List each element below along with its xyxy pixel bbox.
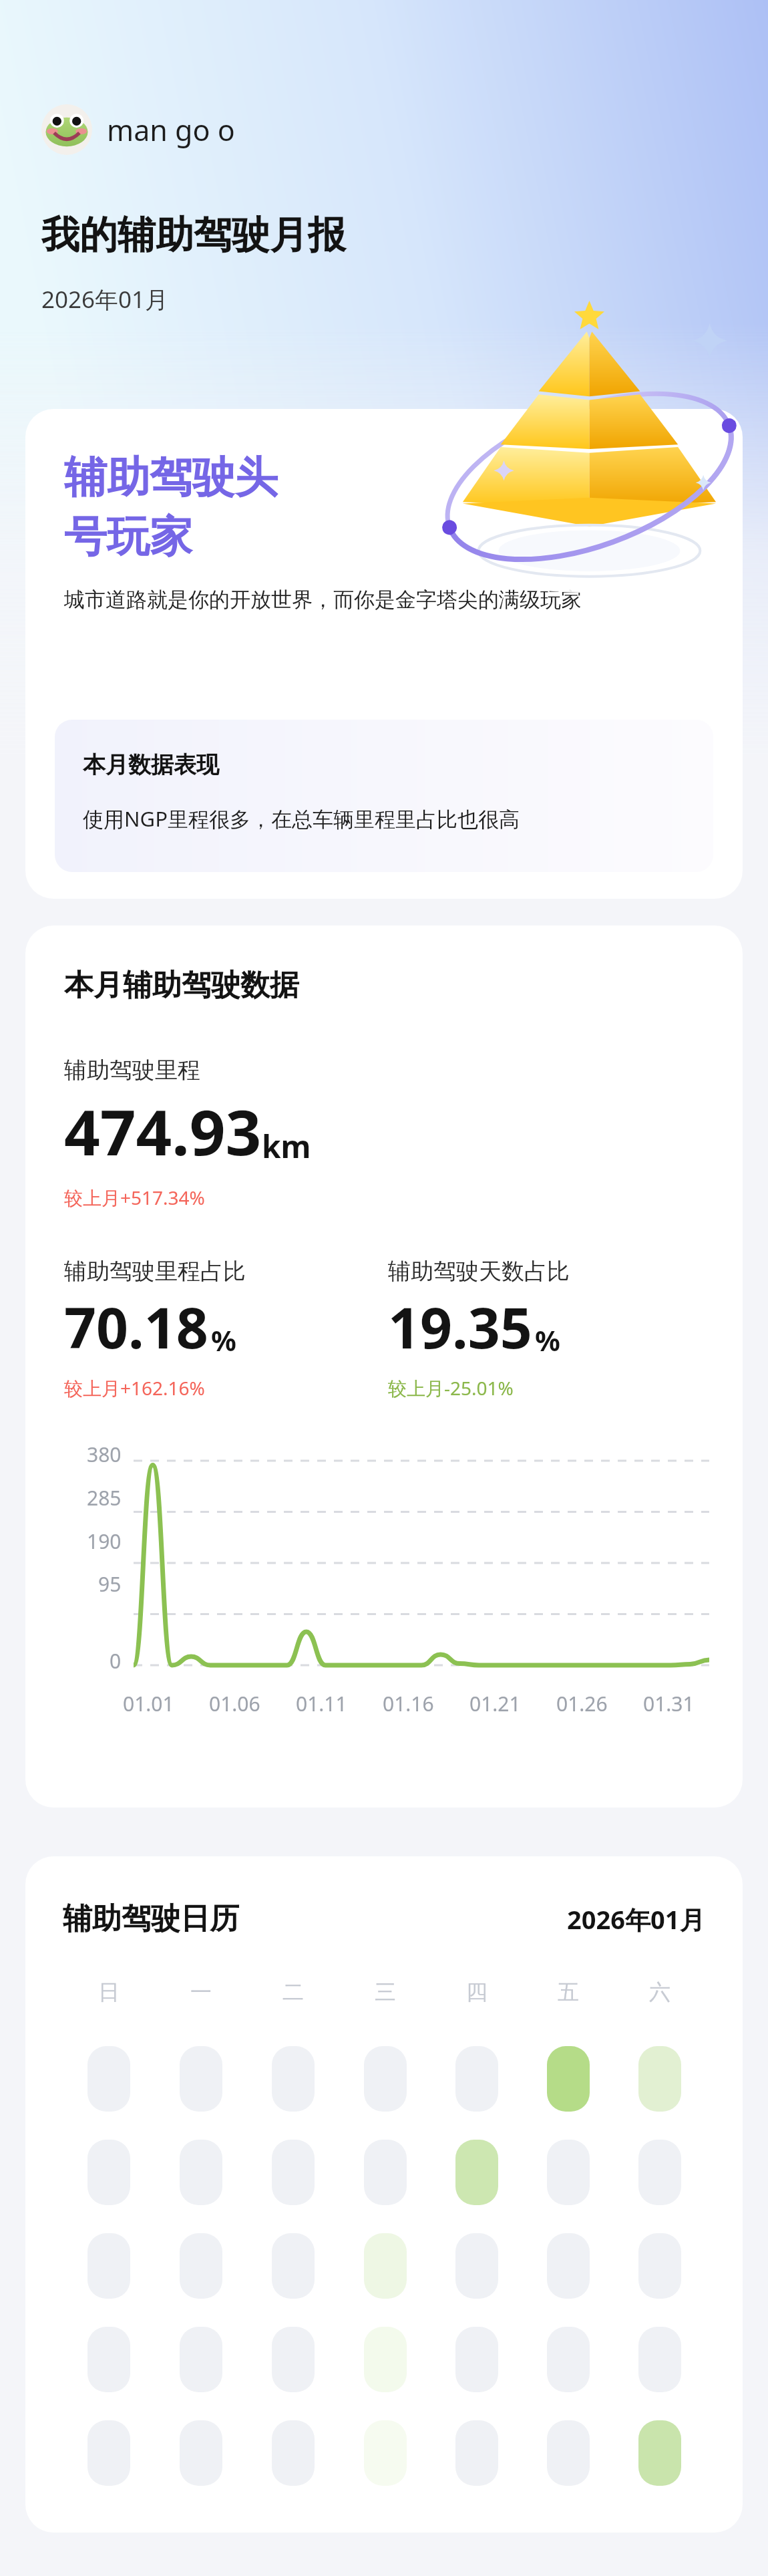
staticText: 使用NGP里程很多，在总车辆里程里占比也很高 [83,805,520,833]
button[interactable] [547,2140,590,2205]
button[interactable] [180,2046,222,2112]
staticText: 三 [375,1979,396,2005]
staticText: km [262,1125,311,1167]
other: Profile avatar [43,106,90,153]
staticText: 辅助驾驶里程占比 [64,1257,246,1286]
button[interactable] [180,2233,222,2299]
staticText: % [535,1321,560,1359]
button[interactable] [87,2327,130,2392]
button[interactable] [272,2420,315,2486]
staticText: 二 [282,1979,304,2005]
staticText: 本月辅助驾驶数据 [64,967,299,1004]
button[interactable] [87,2140,130,2205]
button[interactable] [547,2046,590,2112]
staticText: 285 [87,1484,122,1512]
staticText: 日 [98,1979,120,2005]
staticText: 辅助驾驶头 号玩家 [64,450,278,564]
button[interactable] [455,2233,498,2299]
button[interactable] [364,2140,407,2205]
button[interactable] [272,2233,315,2299]
staticText: 辅助驾驶天数占比 [388,1257,570,1286]
staticText: % [211,1321,236,1359]
staticText: 四 [466,1979,488,2005]
button[interactable] [638,2420,681,2486]
staticText: 2026年01月 [41,283,169,315]
button[interactable] [272,2140,315,2205]
button[interactable] [87,2046,130,2112]
button[interactable]: 辅助驾驶日历 [25,1856,743,2533]
staticText: 01.11 [296,1690,347,1717]
button[interactable] [87,2420,130,2486]
button[interactable]: 本月数据表现 [55,720,713,872]
staticText: 一 [190,1979,212,2005]
button[interactable] [364,2233,407,2299]
button[interactable] [638,2327,681,2392]
button[interactable]: 本月辅助驾驶数据 [25,925,743,1808]
button[interactable] [638,2140,681,2205]
staticText: man go o [107,110,235,150]
button[interactable] [547,2327,590,2392]
button[interactable] [547,2420,590,2486]
button[interactable] [180,2327,222,2392]
button[interactable] [364,2327,407,2392]
button[interactable]: 辅助驾驶头 号玩家 [25,409,743,899]
button[interactable]: 辅助驾驶天数占比 [388,1257,712,1401]
button[interactable] [455,2140,498,2205]
button[interactable] [638,2046,681,2112]
staticText: 190 [87,1528,122,1555]
staticText: 0 [110,1647,122,1675]
button[interactable] [272,2327,315,2392]
staticText: 01.01 [123,1690,174,1717]
staticText: 辅助驾驶里程 [64,1056,200,1085]
button[interactable] [455,2327,498,2392]
staticText: 01.26 [556,1690,608,1717]
button[interactable] [364,2046,407,2112]
staticText: 较上月-25.01% [388,1375,514,1401]
button[interactable] [455,2046,498,2112]
staticText: 19.35 [388,1288,532,1365]
staticText: 474.93 [64,1089,262,1174]
button[interactable] [638,2233,681,2299]
button[interactable] [547,2233,590,2299]
button[interactable] [180,2140,222,2205]
button[interactable]: Profile avatar [37,100,239,159]
staticText: 70.18 [64,1288,208,1365]
button[interactable] [364,2420,407,2486]
button[interactable] [180,2420,222,2486]
staticText: 01.31 [643,1690,695,1717]
staticText: 城市道路就是你的开放世界，而你是金字塔尖的满级玩家 [64,587,582,613]
button[interactable] [455,2420,498,2486]
staticText: 我的辅助驾驶月报 [41,211,346,259]
staticText: 380 [87,1441,122,1468]
button[interactable]: 辅助驾驶里程占比 [64,1257,388,1401]
staticText: 2026年01月 [567,1902,705,1937]
button[interactable] [272,2046,315,2112]
button[interactable] [87,2233,130,2299]
staticText: 较上月+517.34% [64,1185,205,1210]
staticText: 01.06 [209,1690,260,1717]
staticText: 95 [98,1570,122,1598]
staticText: 五 [558,1979,579,2005]
staticText: 辅助驾驶日历 [63,1900,239,1937]
staticText: 本月数据表现 [83,750,219,779]
staticText: 较上月+162.16% [64,1375,205,1401]
staticText: 01.16 [383,1690,434,1717]
staticText: 六 [649,1979,670,2005]
staticText: 01.21 [469,1690,521,1717]
